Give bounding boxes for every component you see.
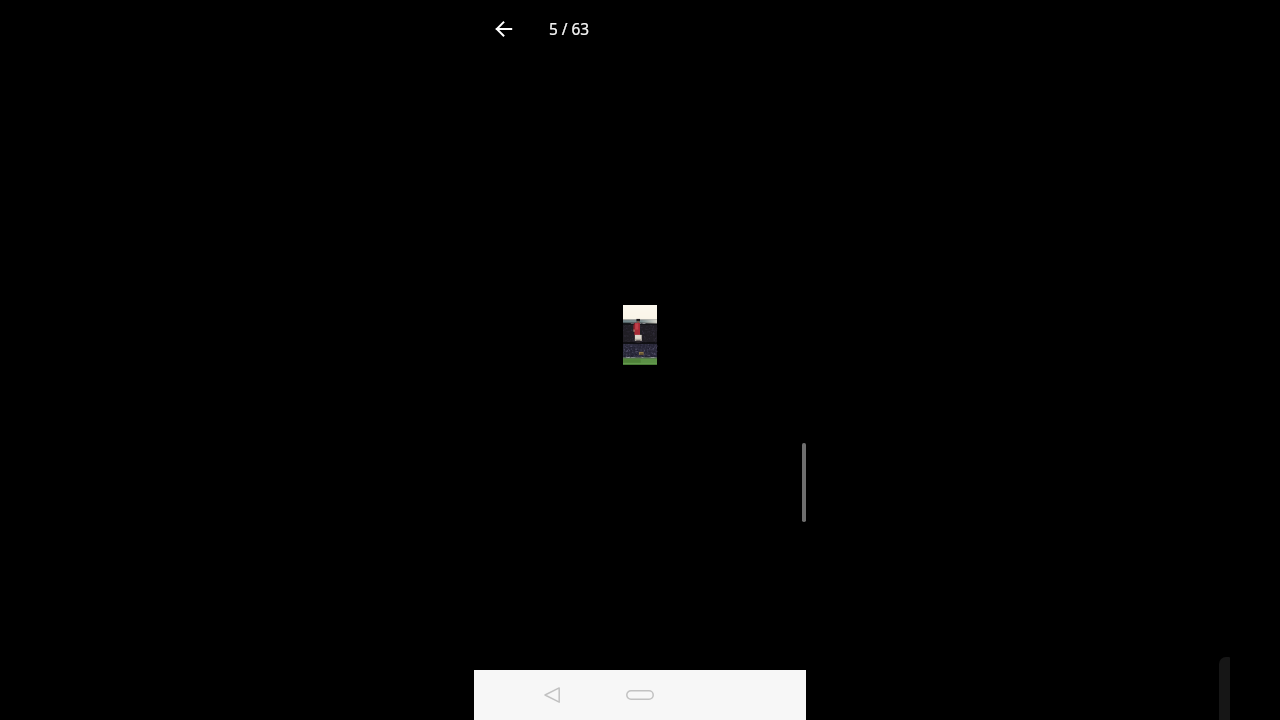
button[interactable]: Back	[532, 675, 572, 715]
staticText: 5 / 63	[549, 19, 590, 40]
button[interactable]: Photo 5 of 63	[623, 305, 657, 365]
button[interactable]: Home	[620, 675, 660, 715]
button[interactable]: Navigate up	[486, 11, 522, 47]
button[interactable]: 5 / 63	[549, 0, 590, 58]
